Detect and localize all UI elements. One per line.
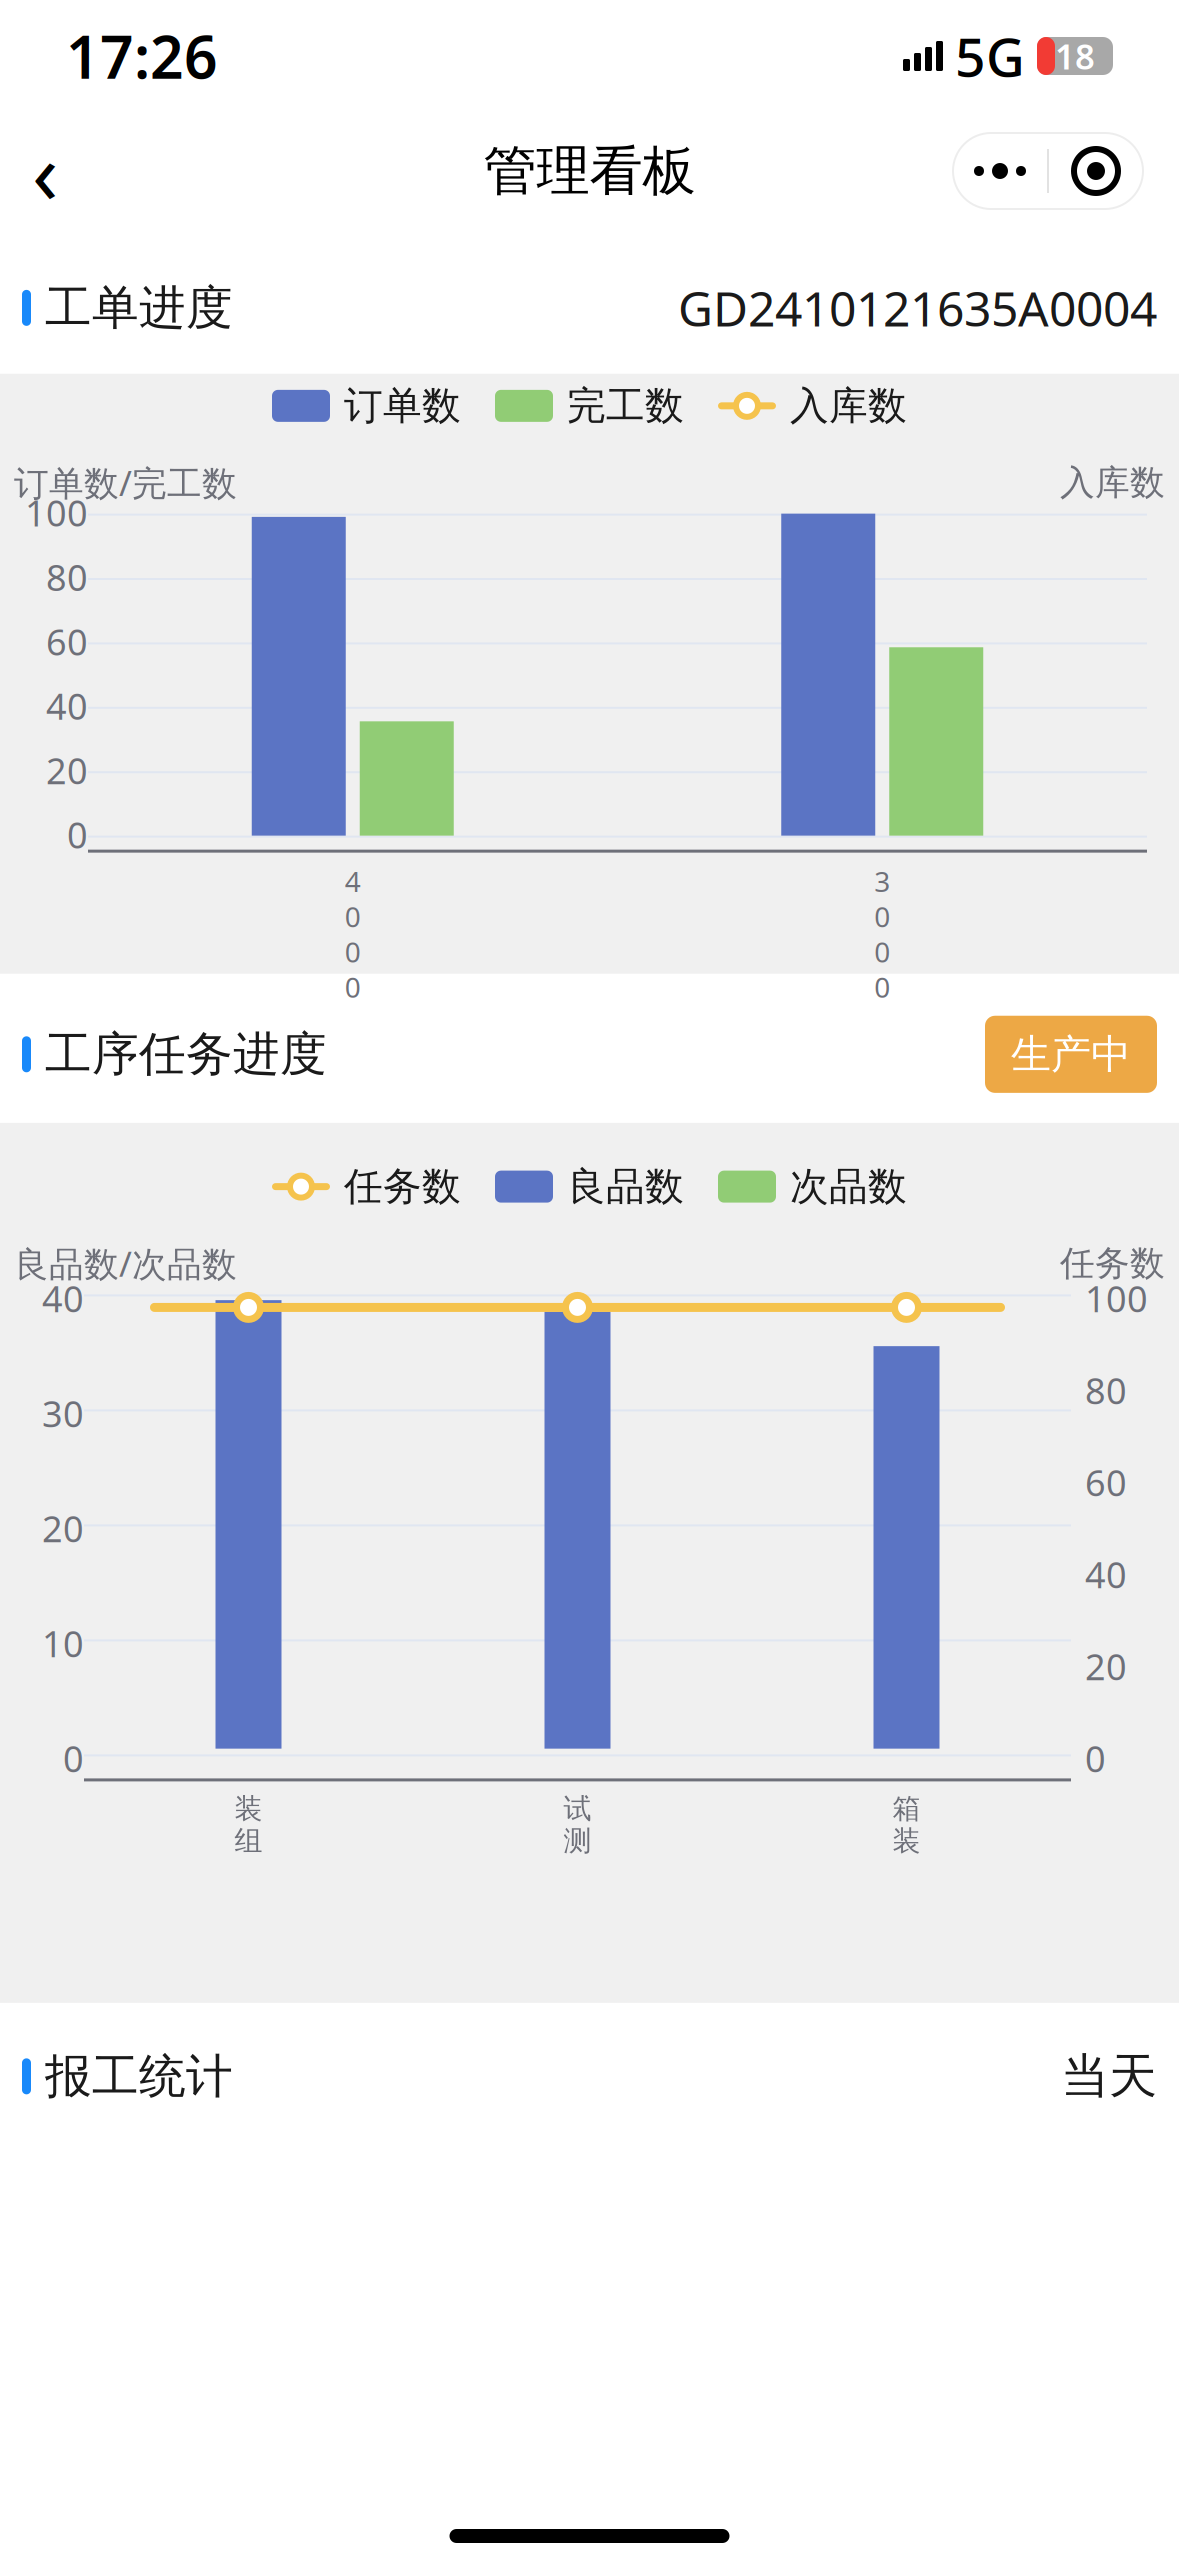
staticText: 20 <box>1085 1642 1127 1690</box>
staticText: 组 <box>234 1824 262 1858</box>
staticText: 入库数 <box>790 382 907 430</box>
staticText: 10 <box>42 1619 84 1667</box>
staticText: 0 <box>67 811 88 858</box>
staticText: 订单数 <box>344 382 461 430</box>
staticText: 100 <box>25 489 88 536</box>
staticText: 装 <box>234 1791 262 1826</box>
button[interactable]: More <box>953 136 1047 206</box>
staticText: 完工数 <box>567 382 684 430</box>
staticText: 工单进度 <box>45 279 233 336</box>
staticText: 测 <box>563 1824 591 1858</box>
button[interactable]: 生产中 <box>985 1016 1157 1093</box>
staticText: 工序任务进度 <box>45 1026 327 1083</box>
staticText: 0 <box>345 933 361 970</box>
button[interactable]: Close <box>1049 136 1143 206</box>
staticText: 80 <box>1085 1366 1127 1414</box>
staticText: 0 <box>63 1734 84 1782</box>
staticText: 装 <box>892 1824 920 1858</box>
staticText: 0 <box>345 898 361 935</box>
staticText: 17:26 <box>66 17 218 95</box>
staticText: 30 <box>42 1389 84 1437</box>
staticText: 任务数 <box>1060 1242 1165 1285</box>
staticText: 40 <box>42 1274 84 1322</box>
staticText: 0 <box>345 968 361 1005</box>
staticText: 0 <box>874 933 890 970</box>
staticText: 订单数/完工数 <box>14 460 237 506</box>
staticText: 80 <box>46 553 88 601</box>
staticText: 20 <box>46 746 88 794</box>
staticText: 18 <box>1055 33 1095 79</box>
staticText: 100 <box>1085 1274 1148 1322</box>
staticText: 0 <box>1085 1734 1106 1782</box>
staticText: 入库数 <box>1060 461 1165 504</box>
staticText: 60 <box>1085 1458 1127 1506</box>
staticText: 4 <box>345 863 361 900</box>
staticText: 试 <box>563 1791 591 1826</box>
staticText: 当天 <box>1061 2047 1157 2106</box>
staticText: 5G <box>955 21 1025 91</box>
staticText: ‹ <box>32 114 58 228</box>
staticText: 报工统计 <box>45 2048 233 2105</box>
staticText: 40 <box>1085 1550 1127 1598</box>
staticText: 管理看板 <box>483 138 695 204</box>
staticText: 20 <box>42 1504 84 1552</box>
staticText: 3 <box>874 863 890 900</box>
staticText: 次品数 <box>790 1163 907 1210</box>
staticText: 良品数 <box>567 1163 684 1210</box>
staticText: 0 <box>874 968 890 1005</box>
staticText: GD2410121635A0004 <box>678 276 1157 340</box>
staticText: 0 <box>874 898 890 935</box>
staticText: 良品数/次品数 <box>14 1240 237 1286</box>
button[interactable]: 当天 <box>1061 2047 1157 2106</box>
staticText: 任务数 <box>344 1163 461 1210</box>
staticText: 60 <box>46 617 88 665</box>
staticText: 生产中 <box>1011 1030 1131 1079</box>
staticText: 40 <box>46 682 88 730</box>
button[interactable]: Back <box>0 126 90 216</box>
staticText: 箱 <box>892 1791 920 1826</box>
